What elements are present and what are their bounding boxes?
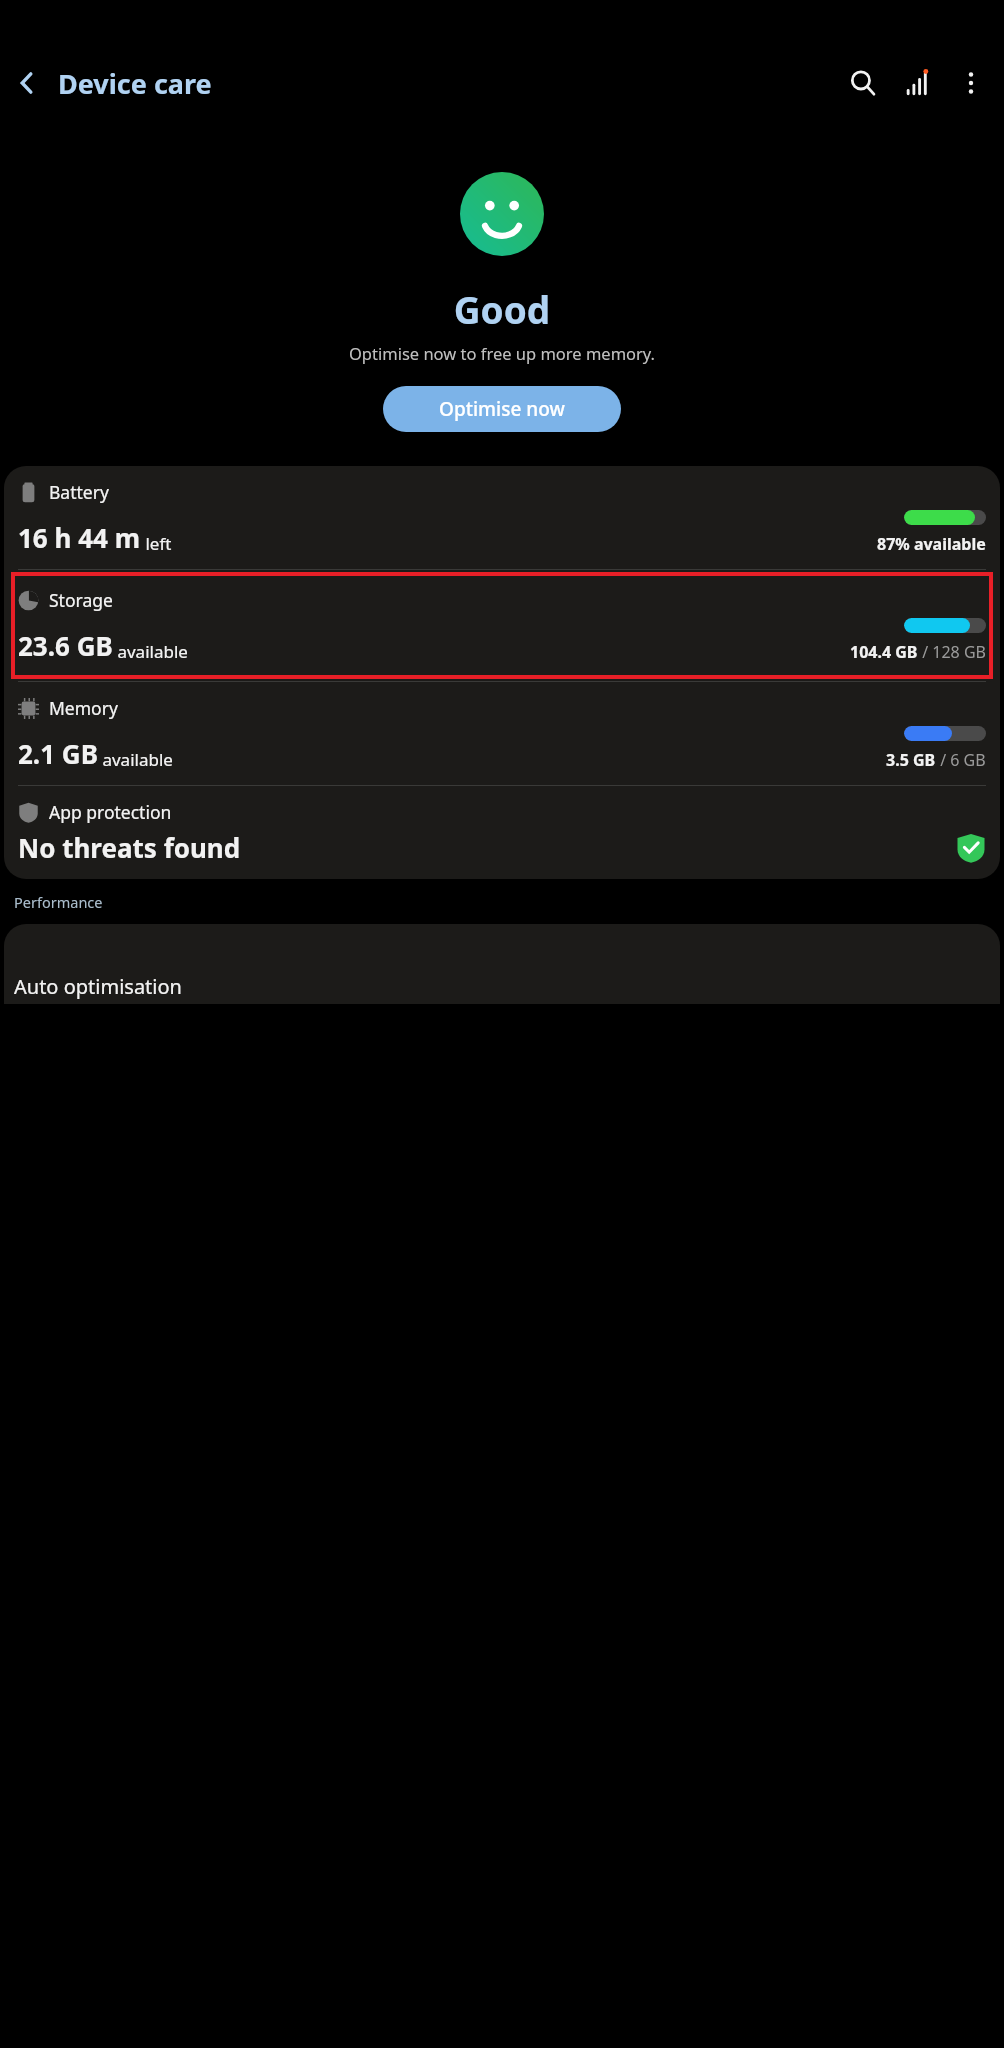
staticText: Device care: [58, 65, 212, 102]
button[interactable]: Search: [836, 56, 890, 110]
button[interactable]: Battery: [4, 466, 1000, 569]
staticText: Optimise now: [439, 396, 565, 422]
button[interactable]: Storage: [4, 574, 1000, 677]
button[interactable]: Optimise now: [383, 386, 621, 432]
button[interactable]: More options: [944, 56, 998, 110]
staticText: Auto optimisation: [14, 973, 182, 1000]
button[interactable]: Back: [0, 56, 54, 110]
staticText: 16 h 44 m: [18, 520, 141, 555]
staticText: Optimise now to free up more memory.: [0, 342, 1004, 364]
staticText: Battery: [49, 480, 109, 504]
staticText: left: [141, 532, 172, 555]
staticText: Performance: [14, 892, 103, 912]
button[interactable]: Auto optimisation: [4, 924, 1000, 1004]
staticText: available: [113, 640, 188, 663]
staticText: 104.4 GB: [850, 641, 918, 663]
staticText: 3.5 GB: [886, 749, 936, 771]
staticText: Storage: [49, 588, 113, 612]
staticText: / 128 GB: [918, 641, 986, 663]
staticText: available: [98, 748, 173, 771]
staticText: 23.6 GB: [18, 628, 113, 663]
staticText: 87% available: [877, 533, 986, 555]
staticText: Memory: [49, 696, 118, 720]
staticText: App protection: [49, 800, 172, 824]
staticText: / 6 GB: [936, 749, 986, 771]
staticText: 2.1 GB: [18, 736, 98, 771]
staticText: No threats found: [18, 830, 241, 865]
button[interactable]: App protection: [4, 786, 1000, 879]
button[interactable]: Diagnostics: [890, 56, 944, 110]
staticText: Good: [0, 284, 1004, 334]
button[interactable]: Memory: [4, 682, 1000, 785]
